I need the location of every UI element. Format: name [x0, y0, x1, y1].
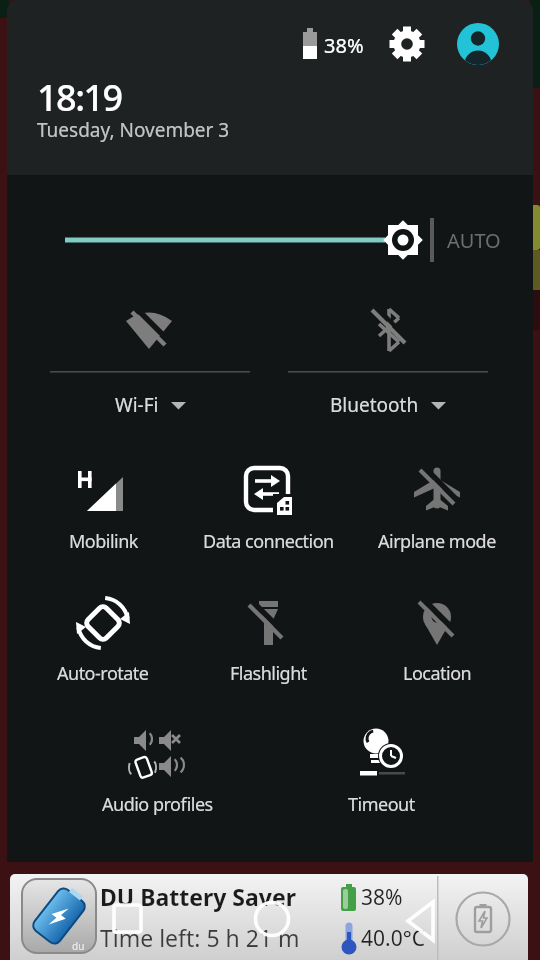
- button[interactable]: Wi-Fi: [45, 300, 255, 420]
- staticText: Auto-rotate: [57, 661, 149, 686]
- staticText: 40.0°C: [361, 924, 425, 953]
- button[interactable]: [455, 891, 511, 947]
- button[interactable]: Audio profiles: [77, 725, 237, 822]
- button[interactable]: Airplane mode: [357, 461, 517, 559]
- button[interactable]: [55, 215, 420, 265]
- button[interactable]: Auto-rotate: [23, 595, 183, 691]
- button[interactable]: Mobilink: [23, 461, 183, 559]
- staticText: Location: [403, 661, 472, 686]
- button[interactable]: Data connection: [188, 461, 348, 559]
- button[interactable]: Timeout: [301, 725, 461, 822]
- staticText: du: [72, 939, 85, 953]
- button[interactable]: Location: [357, 595, 517, 691]
- staticText: Flashlight: [230, 661, 307, 686]
- button[interactable]: [457, 23, 499, 65]
- staticText: Tuesday, November 3: [37, 117, 230, 143]
- button[interactable]: [106, 898, 148, 940]
- button[interactable]: [251, 898, 293, 940]
- staticText: 18:19: [37, 73, 122, 122]
- staticText: Mobilink: [69, 529, 138, 554]
- staticText: Wi-Fi: [115, 392, 159, 418]
- staticText: DU Battery Saver: [100, 881, 296, 912]
- staticText: AUTO: [447, 227, 501, 254]
- button[interactable]: Bluetooth: [283, 300, 493, 420]
- button[interactable]: DU Battery Saver: [10, 874, 528, 960]
- staticText: Audio profiles: [102, 792, 213, 817]
- button[interactable]: Flashlight: [188, 595, 348, 691]
- staticText: Bluetooth: [330, 392, 419, 418]
- staticText: Data connection: [203, 529, 334, 554]
- staticText: Timeout: [348, 792, 415, 817]
- button[interactable]: [401, 896, 443, 944]
- staticText: Time left: 5 h 21 m: [100, 922, 300, 953]
- button[interactable]: [388, 25, 426, 63]
- staticText: Airplane mode: [378, 529, 496, 554]
- staticText: 38%: [324, 32, 364, 59]
- staticText: 38%: [361, 883, 403, 912]
